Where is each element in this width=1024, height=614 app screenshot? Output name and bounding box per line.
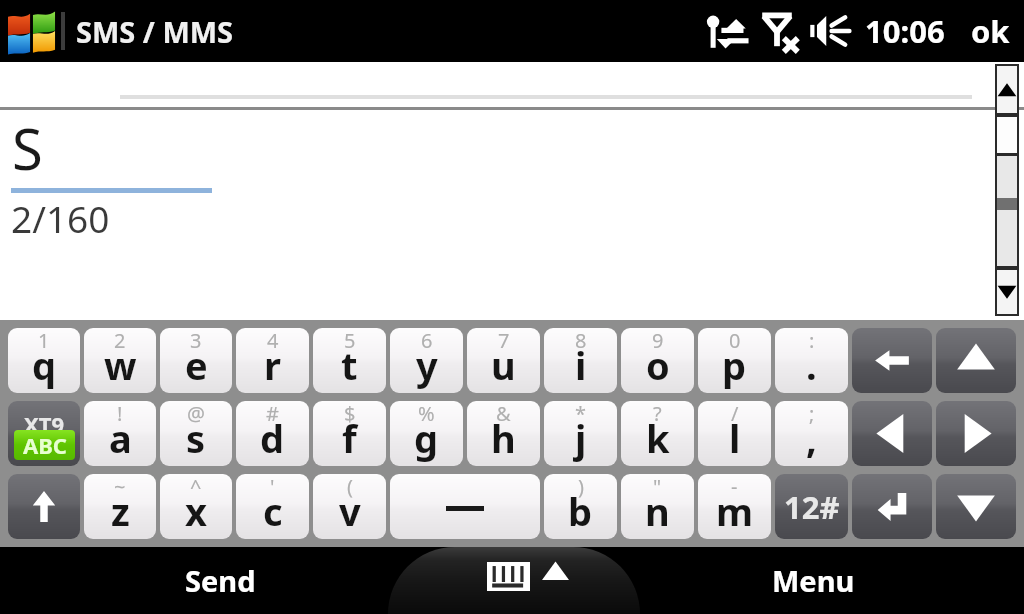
- staticText: ABC: [23, 430, 67, 460]
- button[interactable]: 2: [84, 328, 156, 393]
- button[interactable]: 1: [8, 328, 80, 393]
- staticText: s: [186, 412, 206, 464]
- button[interactable]: ?: [621, 401, 694, 466]
- staticText: a: [109, 412, 132, 464]
- button[interactable]: 9: [621, 328, 694, 393]
- button[interactable]: Menu: [640, 547, 1024, 614]
- staticText: 9: [652, 328, 664, 354]
- button[interactable]: 8: [544, 328, 617, 393]
- button[interactable]: Backspace: [852, 328, 932, 393]
- staticText: 7: [498, 328, 510, 354]
- button[interactable]: Shift: [8, 474, 80, 539]
- staticText: i: [575, 339, 587, 391]
- staticText: SMS / MMS: [76, 12, 234, 51]
- button[interactable]: 7: [467, 328, 540, 393]
- staticText: #: [266, 401, 279, 427]
- button[interactable]: !: [84, 401, 156, 466]
- button[interactable]: XT9 input mode: [8, 401, 80, 466]
- button[interactable]: Send: [0, 547, 388, 614]
- staticText: 6: [421, 328, 433, 354]
- staticText: &: [496, 401, 511, 427]
- button[interactable]: *: [544, 401, 617, 466]
- staticText: 0: [729, 328, 741, 354]
- button[interactable]: 6: [390, 328, 463, 393]
- staticText: :: [809, 328, 815, 354]
- staticText: Menu: [772, 561, 855, 600]
- button[interactable]: Scroll down: [997, 270, 1017, 314]
- button[interactable]: Numbers and symbols: [775, 474, 848, 539]
- staticText: ;: [809, 401, 815, 427]
- staticText: -: [731, 474, 738, 500]
- staticText: 10:06: [865, 10, 945, 52]
- button[interactable]: #: [236, 401, 309, 466]
- staticText: w: [104, 339, 137, 391]
- button[interactable]: Left: [852, 401, 932, 466]
- staticText: @: [187, 401, 205, 427]
- staticText: ,: [806, 412, 817, 464]
- staticText: k: [646, 412, 670, 464]
- staticText: 4: [267, 328, 279, 354]
- staticText: *: [575, 401, 587, 427]
- button[interactable]: -: [698, 474, 771, 539]
- button[interactable]: ^: [160, 474, 232, 539]
- staticText: p: [722, 339, 747, 391]
- staticText: v: [339, 485, 361, 537]
- staticText: ': [270, 474, 275, 500]
- staticText: !: [117, 401, 123, 427]
- staticText: $: [344, 401, 356, 427]
- staticText: e: [185, 339, 208, 391]
- button[interactable]: Hide keyboard: [487, 543, 569, 610]
- staticText: ^: [190, 474, 202, 500]
- staticText: %: [418, 401, 435, 427]
- staticText: y: [416, 339, 438, 391]
- staticText: d: [260, 412, 285, 464]
- button[interactable]: ': [236, 474, 309, 539]
- staticText: ": [653, 474, 662, 500]
- button[interactable]: 0: [698, 328, 771, 393]
- button[interactable]: 5: [313, 328, 386, 393]
- button[interactable]: ok: [971, 10, 1010, 52]
- button[interactable]: @: [160, 401, 232, 466]
- button[interactable]: &: [467, 401, 540, 466]
- button[interactable]: Scroll up: [997, 66, 1017, 113]
- staticText: 5: [344, 328, 356, 354]
- button[interactable]: ~: [84, 474, 156, 539]
- button[interactable]: :: [775, 328, 848, 393]
- staticText: 1: [38, 328, 50, 354]
- staticText: g: [414, 412, 439, 464]
- button[interactable]: Right: [936, 401, 1016, 466]
- button[interactable]: Up: [936, 328, 1016, 393]
- button[interactable]: 4: [236, 328, 309, 393]
- staticText: l: [729, 412, 741, 464]
- staticText: u: [491, 339, 516, 391]
- button[interactable]: (: [313, 474, 386, 539]
- staticText: h: [491, 412, 516, 464]
- button[interactable]: Space: [390, 474, 540, 539]
- staticText: m: [716, 485, 754, 537]
- staticText: q: [32, 339, 57, 391]
- staticText: ~: [114, 474, 126, 500]
- staticText: 3: [190, 328, 202, 354]
- staticText: n: [645, 485, 670, 537]
- button[interactable]: /: [698, 401, 771, 466]
- staticText: 2: [114, 328, 126, 354]
- staticText: /: [731, 401, 739, 427]
- staticText: XT9: [24, 409, 65, 439]
- button[interactable]: Enter: [852, 474, 932, 539]
- button[interactable]: ): [544, 474, 617, 539]
- button[interactable]: ;: [775, 401, 848, 466]
- button[interactable]: %: [390, 401, 463, 466]
- button[interactable]: 3: [160, 328, 232, 393]
- staticText: t: [341, 339, 358, 391]
- button[interactable]: Down: [936, 474, 1016, 539]
- staticText: Send: [185, 561, 256, 600]
- staticText: 12#: [784, 486, 840, 528]
- button[interactable]: $: [313, 401, 386, 466]
- staticText: 8: [575, 328, 587, 354]
- staticText: b: [568, 485, 593, 537]
- button[interactable]: ": [621, 474, 694, 539]
- staticText: 2/160: [11, 193, 110, 243]
- staticText: x: [185, 485, 207, 537]
- staticText: f: [342, 412, 357, 464]
- staticText: ): [578, 474, 584, 500]
